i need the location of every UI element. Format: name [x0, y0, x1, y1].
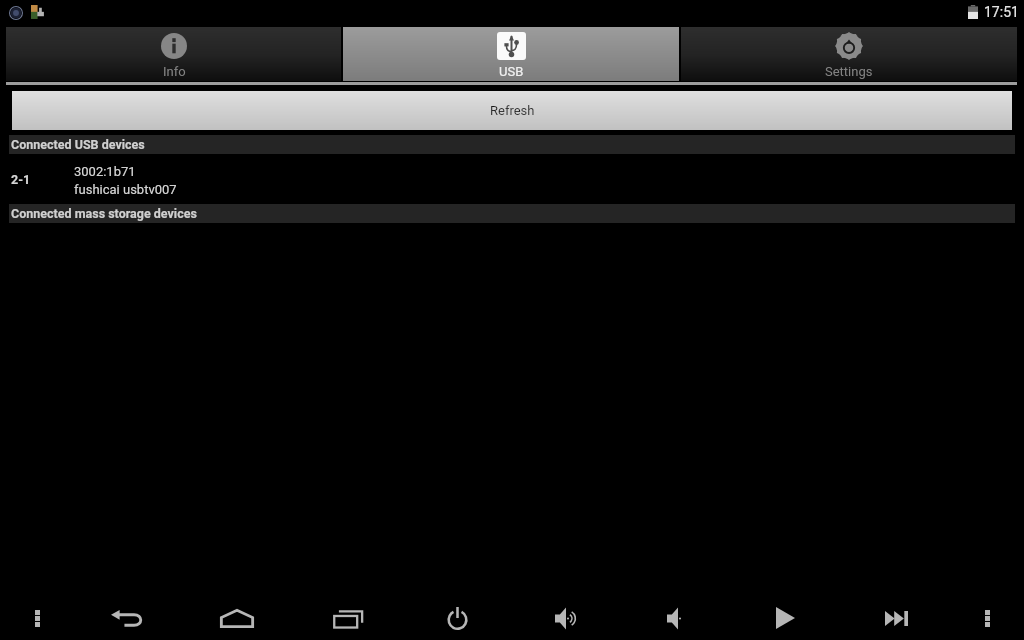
staticText: 2-1 [11, 172, 74, 187]
staticText: Info [163, 64, 186, 79]
button[interactable]: Back [101, 596, 153, 640]
staticText: Refresh [490, 103, 535, 118]
staticText: Settings [825, 64, 873, 79]
button[interactable]: Play [759, 596, 811, 640]
button[interactable]: Refresh [12, 91, 1012, 130]
button[interactable]: Settings [681, 27, 1017, 81]
button[interactable]: More options [11, 596, 63, 640]
staticText: Connected mass storage devices [11, 206, 197, 221]
button[interactable]: Recent apps [322, 596, 374, 640]
staticText: fushicai usbtv007 [74, 182, 177, 197]
staticText: 17:51 [984, 4, 1019, 20]
staticText: Connected USB devices [11, 137, 145, 152]
button[interactable]: 2-1 [0, 154, 1024, 204]
staticText: 3002:1b71 [74, 164, 136, 179]
staticText: USB [499, 64, 524, 79]
button[interactable]: Home [211, 596, 263, 640]
button[interactable]: Volume down [652, 596, 704, 640]
button[interactable]: Volume up [540, 596, 592, 640]
button[interactable]: Info [6, 27, 341, 81]
button[interactable]: Power [431, 596, 483, 640]
button[interactable]: Next track [870, 596, 922, 640]
button[interactable]: USB [343, 27, 679, 81]
button[interactable]: More [961, 596, 1013, 640]
